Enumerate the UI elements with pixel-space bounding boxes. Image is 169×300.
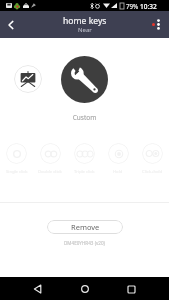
- button[interactable]: Back: [0, 14, 22, 36]
- staticText: Double click: [38, 169, 62, 175]
- button[interactable]: Remove: [47, 220, 123, 234]
- staticText: Triple click: [74, 169, 95, 175]
- button[interactable]: Home: [77, 281, 93, 297]
- staticText: 10:32: [140, 2, 157, 11]
- button[interactable]: Statistics: [14, 65, 42, 93]
- staticText: Hold: [113, 169, 123, 175]
- button[interactable]: Back: [30, 281, 46, 297]
- staticText: Single click: [6, 169, 28, 175]
- button[interactable]: Triple click: [67, 143, 101, 175]
- button[interactable]: Single click: [0, 143, 33, 175]
- button[interactable]: Double click: [33, 143, 67, 175]
- button[interactable]: Custom: [61, 56, 108, 103]
- button[interactable]: Recent apps: [123, 281, 139, 297]
- staticText: Click+hold: [142, 169, 163, 175]
- button[interactable]: More options: [149, 15, 168, 34]
- staticText: Remove: [71, 222, 100, 232]
- staticText: Custom: [0, 113, 169, 122]
- staticText: DM4E0YHR43 (v20): [0, 240, 169, 246]
- staticText: Near: [78, 26, 92, 34]
- button[interactable]: Click+hold: [135, 143, 169, 175]
- staticText: 79%: [126, 2, 139, 10]
- staticText: home keys: [63, 15, 107, 27]
